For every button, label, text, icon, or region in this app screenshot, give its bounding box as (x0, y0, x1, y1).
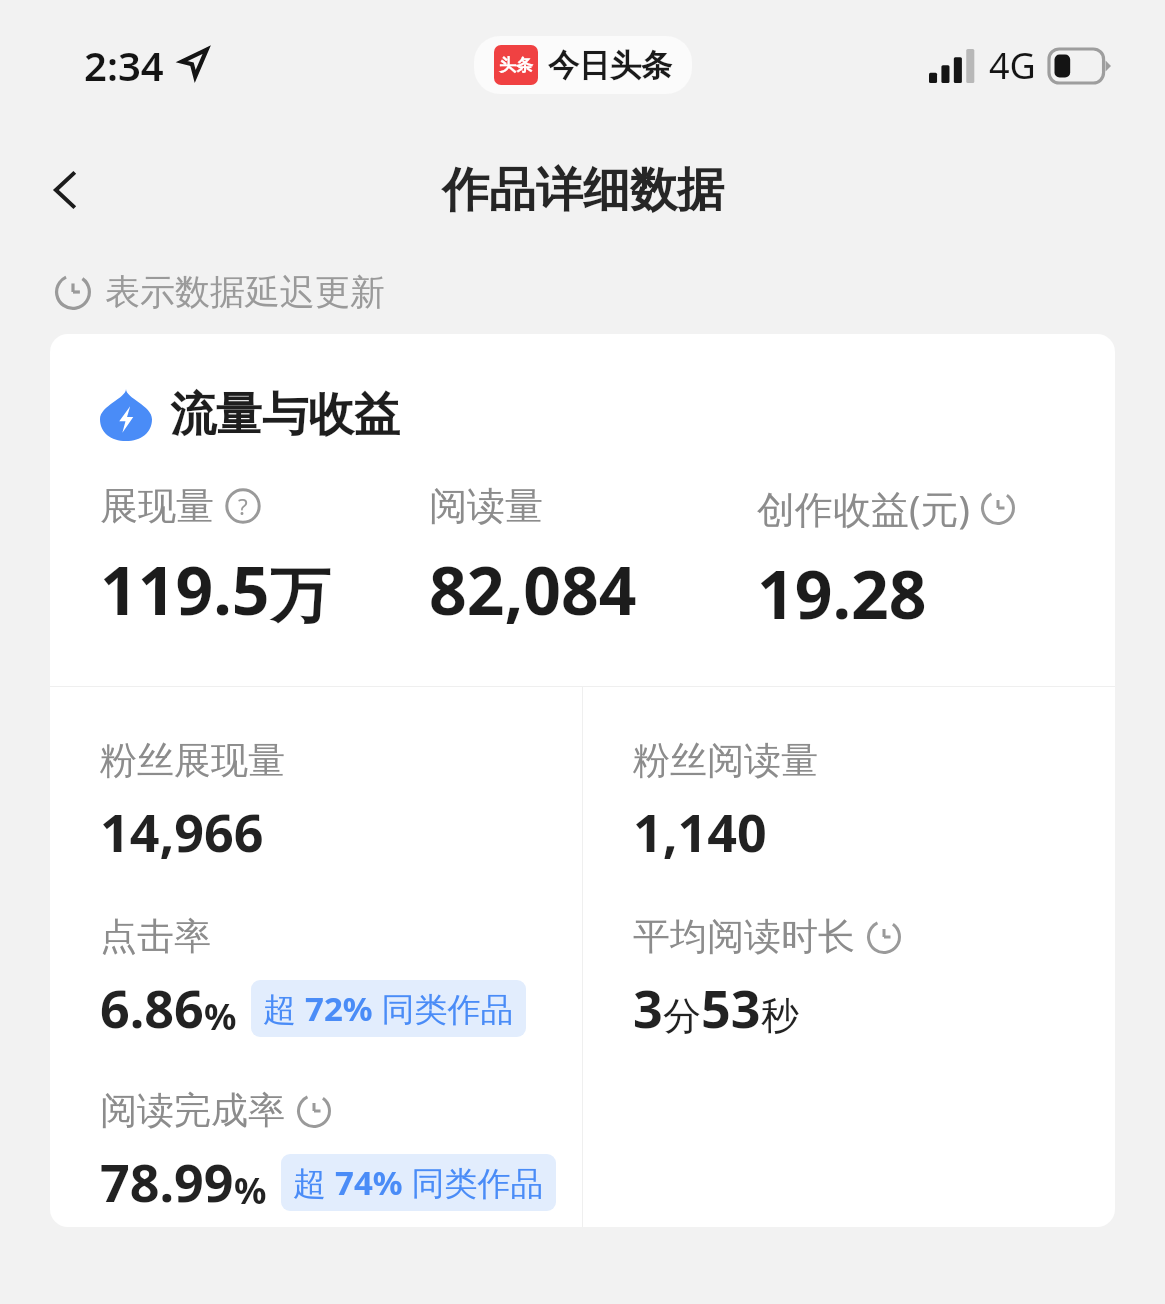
button[interactable]: 展现量 (100, 482, 429, 634)
staticText: 展现量 (100, 482, 214, 530)
staticText: 万 (270, 558, 330, 634)
staticText: 超 (263, 986, 305, 1031)
staticText: 1,140 (633, 796, 767, 867)
button[interactable]: 阅读完成率 (100, 1087, 556, 1217)
staticText: 粉丝展现量 (100, 737, 285, 784)
staticText: 点击率 (100, 913, 211, 960)
staticText: 同类作品 (373, 986, 514, 1031)
staticText: 流量与收益 (170, 386, 400, 444)
staticText: 作品详细数据 (442, 161, 724, 220)
staticText: 创作收益(元) (757, 482, 970, 534)
staticText: 2:34 (84, 38, 164, 92)
staticText: 粉丝阅读量 (633, 737, 818, 784)
staticText: 72% (305, 986, 373, 1031)
staticText: 分 (663, 992, 701, 1040)
staticText: 同类作品 (403, 1160, 544, 1205)
staticText: 表示数据延迟更新 (105, 270, 385, 314)
staticText: % (204, 992, 237, 1041)
button[interactable]: 流量与收益 (100, 386, 1115, 444)
button[interactable]: 粉丝展现量 (100, 737, 285, 867)
staticText: 82,084 (429, 544, 637, 634)
staticText: 超 (293, 1160, 335, 1205)
staticText: 6.86 (100, 972, 204, 1043)
staticText: 19.28 (757, 548, 927, 638)
button[interactable]: 创作收益(元) (757, 482, 1085, 638)
staticText: 今日头条 (548, 46, 672, 85)
staticText: 阅读量 (429, 482, 543, 530)
staticText: 秒 (761, 992, 799, 1040)
staticText: 119.5 (100, 544, 270, 634)
staticText: % (234, 1166, 267, 1215)
staticText: 阅读完成率 (100, 1087, 285, 1134)
button[interactable]: 返回 (26, 150, 106, 230)
staticText: 平均阅读时长 (633, 913, 855, 960)
staticText: 78.99 (100, 1146, 234, 1217)
button[interactable]: 点击率 (100, 913, 526, 1043)
button[interactable]: 粉丝阅读量 (633, 737, 818, 867)
staticText: 4G (989, 41, 1036, 90)
staticText: 74% (335, 1160, 403, 1205)
staticText: 14,966 (100, 796, 264, 867)
staticText: 53 (701, 972, 761, 1043)
staticText: 头条 (499, 55, 533, 76)
staticText: 3 (633, 972, 663, 1043)
staticText: ? (238, 491, 248, 521)
button[interactable]: 阅读量 (429, 482, 757, 634)
